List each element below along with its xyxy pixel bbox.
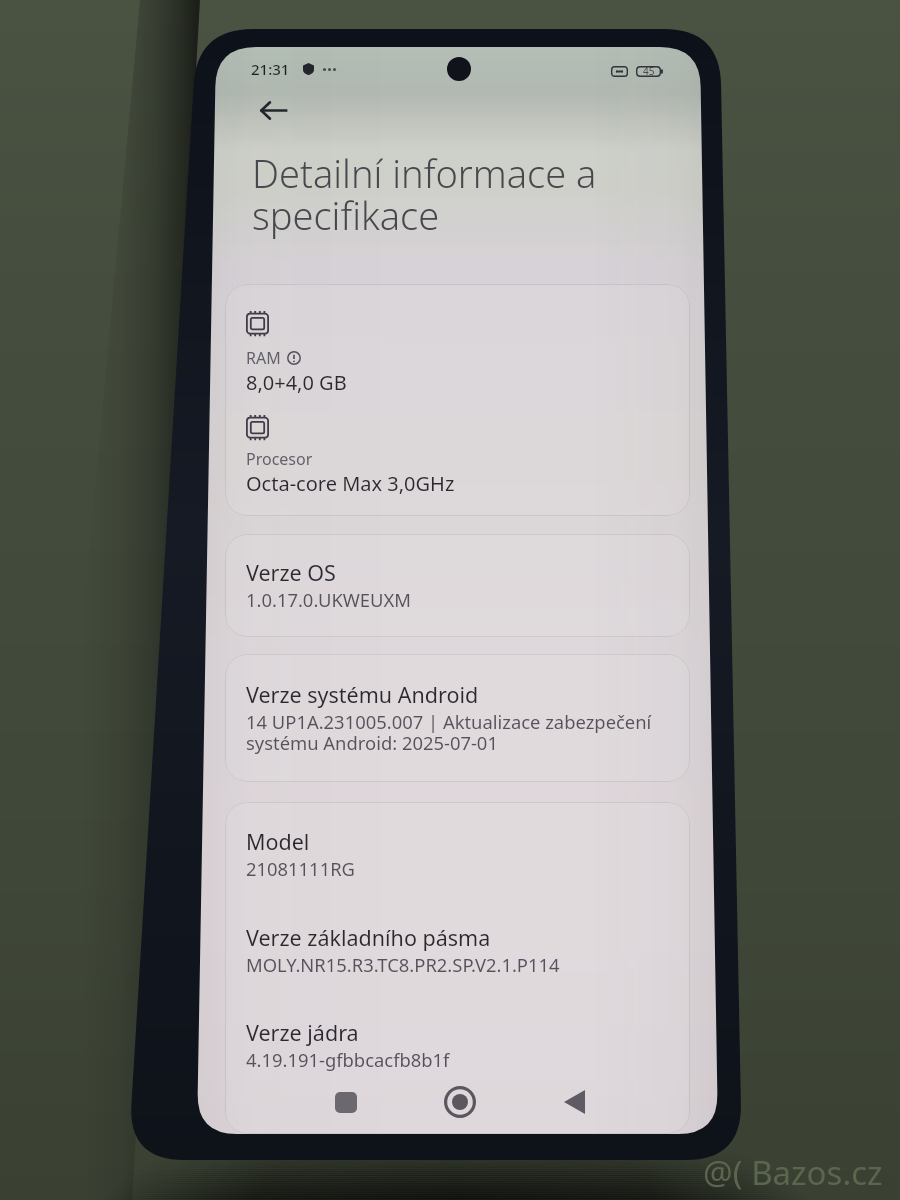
staticText: Verze jádra	[246, 1018, 359, 1047]
button[interactable]: Model	[225, 802, 690, 1134]
staticText: Verze systému Android	[246, 680, 479, 709]
staticText: Verze OS	[246, 558, 336, 587]
button[interactable]: Home	[432, 1074, 488, 1130]
staticText: Procesor	[246, 448, 313, 470]
staticText: 1.0.17.0.UKWEUXM	[246, 587, 412, 612]
button[interactable]: RAM	[225, 284, 690, 516]
staticText: Octa-core Max 3,0GHz	[246, 470, 455, 497]
button[interactable]: Back	[242, 82, 306, 138]
button[interactable]: Verze OS	[225, 534, 690, 637]
staticText: 8,0+4,0 GB	[246, 369, 347, 396]
staticText: RAM	[246, 347, 281, 369]
staticText: 4.19.191-gfbbcacfb8b1f	[246, 1047, 450, 1072]
staticText: @( Bazos.cz	[703, 1150, 883, 1195]
staticText: 21081111RG	[246, 856, 355, 881]
staticText: Model	[246, 827, 310, 856]
staticText: 14 UP1A.231005.007 | Aktualizace zabezpe…	[246, 709, 678, 756]
staticText: MOLY.NR15.R3.TC8.PR2.SP.V2.1.P114	[246, 952, 560, 977]
staticText: 21:31	[251, 59, 290, 79]
button[interactable]: Recent apps	[318, 1074, 374, 1130]
staticText: Verze základního pásma	[246, 923, 491, 952]
button[interactable]: Back	[546, 1074, 602, 1130]
staticText: Detailní informace a specifikace	[252, 147, 629, 241]
button[interactable]: Verze systému Android	[225, 654, 690, 782]
staticText: 45	[643, 64, 655, 78]
